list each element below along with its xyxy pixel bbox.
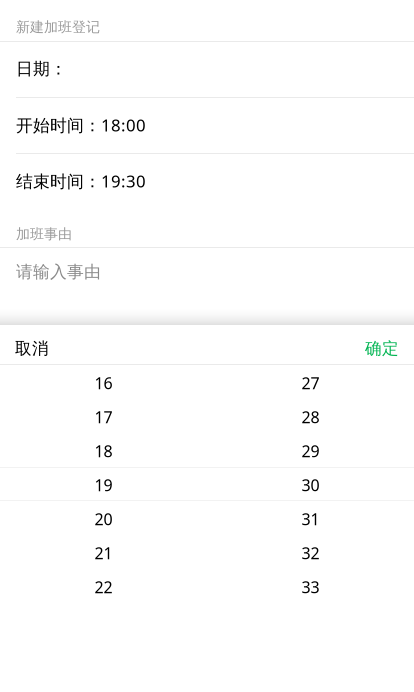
button[interactable]: 31: [207, 502, 414, 536]
button[interactable]: 取消: [0, 329, 63, 368]
staticText: 27: [301, 372, 319, 394]
staticText: 32: [301, 542, 319, 564]
staticText: 31: [301, 508, 319, 530]
staticText: 21: [94, 542, 112, 564]
button[interactable]: 22: [0, 570, 207, 604]
button[interactable]: 结束时间：19:30: [0, 153, 414, 209]
button[interactable]: 27: [207, 366, 414, 400]
staticText: 18: [94, 440, 112, 462]
staticText: 日期：: [16, 58, 67, 80]
button[interactable]: 19: [0, 468, 207, 502]
button[interactable]: 确定: [351, 329, 414, 368]
staticText: 33: [301, 576, 319, 598]
staticText: 19: [94, 474, 112, 496]
staticText: 20: [94, 508, 112, 530]
button[interactable]: 请输入事由: [0, 248, 414, 296]
button[interactable]: 17: [0, 400, 207, 434]
staticText: 新建加班登记: [16, 18, 100, 36]
button[interactable]: 16: [0, 366, 207, 400]
staticText: 结束时间：19:30: [16, 170, 146, 192]
staticText: 16: [94, 372, 112, 394]
staticText: 28: [301, 406, 319, 428]
button[interactable]: 30: [207, 468, 414, 502]
staticText: 确定: [365, 338, 399, 359]
staticText: 加班事由: [16, 225, 72, 243]
staticText: 请输入事由: [16, 261, 101, 283]
staticText: 取消: [15, 338, 49, 359]
staticText: 17: [94, 406, 112, 428]
button[interactable]: 21: [0, 536, 207, 570]
staticText: 30: [301, 474, 319, 496]
button[interactable]: 日期：: [0, 41, 414, 97]
button[interactable]: 28: [207, 400, 414, 434]
button[interactable]: 32: [207, 536, 414, 570]
staticText: 开始时间：18:00: [16, 114, 146, 136]
button[interactable]: 29: [207, 434, 414, 468]
button[interactable]: 20: [0, 502, 207, 536]
button[interactable]: 18: [0, 434, 207, 468]
staticText: 22: [94, 576, 112, 598]
button[interactable]: 开始时间：18:00: [0, 97, 414, 153]
staticText: 29: [301, 440, 319, 462]
button[interactable]: 33: [207, 570, 414, 604]
